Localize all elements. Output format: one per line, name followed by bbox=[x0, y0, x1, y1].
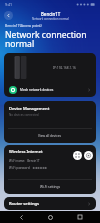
button[interactable]: Recent apps bbox=[71, 211, 89, 223]
button[interactable]: View all devices bbox=[4, 129, 96, 143]
staticText: Router settings bbox=[9, 201, 40, 207]
button[interactable]: Router settings bbox=[4, 197, 96, 210]
staticText: Bencin1T(Access point) bbox=[5, 23, 42, 28]
button[interactable]: Wi-Fi settings bbox=[4, 180, 96, 194]
staticText: Network connection normal bbox=[5, 29, 87, 49]
staticText: Bencin1T bbox=[41, 11, 61, 17]
button[interactable]: Share Wi-Fi bbox=[84, 151, 93, 160]
staticText: Network connection normal bbox=[32, 17, 69, 21]
staticText: Wi-Fi password: ✻✻✻✻✻✻ bbox=[9, 166, 48, 170]
staticText: Wi-Fi settings bbox=[40, 185, 61, 189]
staticText: No devices connected bbox=[9, 113, 39, 117]
staticText: 9:41 bbox=[5, 2, 13, 7]
button[interactable]: Device Management bbox=[4, 101, 96, 128]
button[interactable]: Home bbox=[41, 211, 59, 223]
staticText: Wi-Fi name: Bencin1T bbox=[9, 159, 40, 163]
button[interactable]: Back bbox=[12, 211, 30, 223]
button[interactable]: Back bbox=[4, 11, 13, 20]
staticText: Device Management bbox=[9, 106, 50, 112]
button[interactable]: Show QR code bbox=[73, 151, 82, 160]
staticText: View all devices bbox=[38, 134, 62, 138]
staticText: Mesh network devices bbox=[20, 88, 54, 92]
button[interactable]: Mesh network devices bbox=[4, 82, 96, 97]
staticText: Wireless Internet bbox=[9, 149, 43, 155]
staticText: IP:192.168.1.16 bbox=[53, 66, 76, 70]
